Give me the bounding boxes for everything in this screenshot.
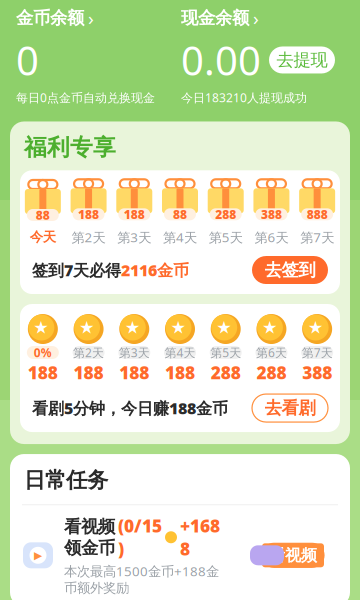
staticText: 第2天 <box>73 345 104 360</box>
staticText: ★ <box>308 318 324 337</box>
staticText: › <box>253 6 259 30</box>
staticText: 288 <box>215 206 236 222</box>
staticText: 看视频领金币 <box>64 516 115 559</box>
staticText: 签到7天必得 <box>32 259 121 281</box>
staticText: 第2天 <box>72 228 106 246</box>
staticText: 188 <box>165 361 195 384</box>
staticText: 88 <box>36 207 50 223</box>
staticText: 第5天 <box>210 345 241 360</box>
button[interactable]: 现金余额 <box>181 6 259 30</box>
staticText: 188 <box>119 361 149 384</box>
staticText: 388 <box>261 206 282 222</box>
staticText: 去看剧 <box>264 397 315 419</box>
staticText: 288 <box>256 361 286 384</box>
staticText: 本次最高1500金币+188金币额外奖励 <box>64 562 219 596</box>
staticText: 288 <box>211 361 241 384</box>
staticText: 2116金币 <box>121 259 189 281</box>
staticText: 第4天 <box>164 345 195 360</box>
staticText: 日常任务 <box>24 467 108 493</box>
staticText: 去签到 <box>264 259 315 281</box>
staticText: 看剧5分钟，今日赚188金币 <box>32 397 228 419</box>
staticText: 88 <box>173 206 187 222</box>
staticText: ★ <box>216 318 232 337</box>
staticText: ▶ <box>34 549 42 561</box>
staticText: 第5天 <box>209 228 243 246</box>
staticText: 188 <box>28 361 58 384</box>
staticText: (0/15) <box>118 514 162 560</box>
staticText: +1688 <box>180 514 220 560</box>
button[interactable]: 去签到 <box>252 256 328 284</box>
staticText: 今天 <box>30 229 56 245</box>
staticText: ★ <box>170 318 186 337</box>
button[interactable]: 去提现 <box>269 46 335 73</box>
staticText: 第6天 <box>254 228 288 246</box>
staticText: 第3天 <box>117 228 151 246</box>
staticText: 388 <box>302 361 332 384</box>
staticText: 每日0点金币自动兑换现金 <box>16 89 155 105</box>
staticText: › <box>88 6 94 30</box>
staticText: 888 <box>307 206 328 222</box>
button[interactable]: 看视频 <box>248 542 338 568</box>
staticText: 福利专享 <box>24 133 116 161</box>
staticText: 去提现 <box>276 49 327 71</box>
staticText: ★ <box>262 318 278 337</box>
staticText: ★ <box>79 318 95 337</box>
staticText: 0 <box>16 33 39 86</box>
staticText: ★ <box>125 318 141 337</box>
staticText: 0.00 <box>181 33 261 86</box>
staticText: 188 <box>78 206 99 222</box>
staticText: 第6天 <box>256 345 287 360</box>
staticText: 今日183210人提现成功 <box>181 89 307 105</box>
staticText: 第7天 <box>302 345 333 360</box>
staticText: 188 <box>124 206 145 222</box>
button[interactable]: 去看剧 <box>252 394 328 422</box>
staticText: ★ <box>33 318 49 337</box>
staticText: 金币余额 <box>16 7 84 29</box>
button[interactable]: 金币余额 <box>16 6 94 30</box>
staticText: 0% <box>34 345 52 360</box>
staticText: 看视频 <box>269 545 317 565</box>
staticText: 第4天 <box>163 228 197 246</box>
staticText: 第7天 <box>300 228 334 246</box>
staticText: 第3天 <box>119 345 150 360</box>
staticText: 188 <box>74 361 104 384</box>
staticText: 现金余额 <box>181 7 249 29</box>
